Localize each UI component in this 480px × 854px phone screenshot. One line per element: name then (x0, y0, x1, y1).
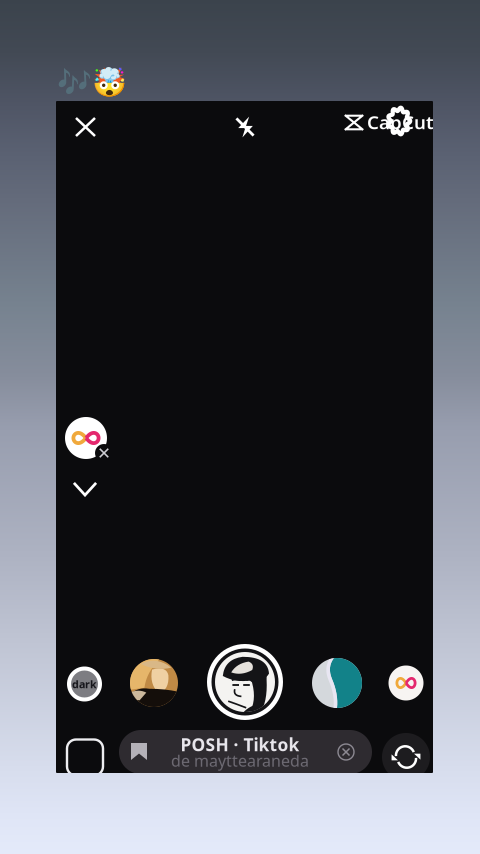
staticText: 🎶🤯 (57, 66, 127, 98)
staticText: CapCut (367, 110, 434, 134)
staticText: dark (72, 677, 97, 691)
button[interactable]: Remove effect (65, 417, 119, 469)
button[interactable]: Flash off (222, 105, 268, 149)
button[interactable]: Dark effect (59, 659, 109, 709)
button[interactable]: Warm portrait effect (124, 653, 184, 713)
button[interactable]: Flip camera (379, 730, 433, 784)
staticText: de mayttearaneda (171, 750, 309, 771)
button[interactable]: Close (62, 105, 108, 149)
button[interactable]: Teal effect (306, 652, 368, 714)
button[interactable]: Sound: POSH · Tiktok by mayttearaneda (119, 730, 372, 774)
button[interactable]: CapCut (343, 106, 431, 140)
staticText: POSH · Tiktok (180, 733, 299, 756)
button[interactable]: Current effect, selected (200, 637, 290, 727)
button[interactable]: Hide effect panel (63, 472, 107, 506)
button[interactable]: Open gallery (61, 735, 108, 780)
button[interactable]: More effects (381, 658, 431, 708)
